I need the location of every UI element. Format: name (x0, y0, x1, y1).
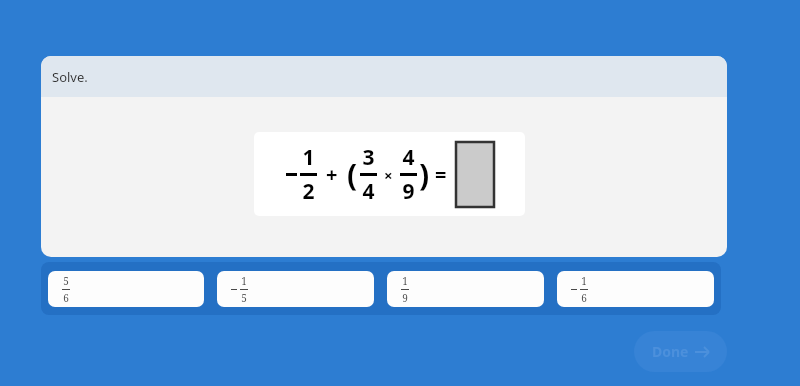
staticText: 6 (63, 291, 69, 305)
staticText: 1 (402, 274, 408, 288)
button[interactable]: 5 (48, 271, 204, 307)
staticText: ) (419, 154, 430, 195)
staticText: 4 (402, 143, 415, 172)
staticText: ( (347, 154, 358, 195)
staticText: 1 (241, 274, 247, 288)
staticText: 4 (362, 177, 375, 206)
button[interactable]: 1 (217, 271, 374, 307)
staticText: = (435, 161, 447, 188)
staticText: × (384, 165, 393, 185)
staticText: 9 (402, 177, 415, 206)
button[interactable]: Done (634, 331, 727, 372)
staticText: 6 (581, 291, 587, 305)
staticText: 2 (302, 177, 315, 206)
staticText: 1 (302, 143, 315, 172)
button[interactable]: 1 (557, 271, 714, 307)
staticText: 1 (581, 274, 587, 288)
staticText: Solve. (52, 68, 88, 86)
staticText: 5 (241, 291, 247, 305)
staticText: Done (652, 342, 689, 361)
button[interactable]: 1 (387, 271, 544, 307)
staticText: 3 (362, 143, 375, 172)
staticText: + (326, 161, 338, 188)
staticText: 5 (63, 274, 69, 288)
staticText: 9 (402, 291, 408, 305)
